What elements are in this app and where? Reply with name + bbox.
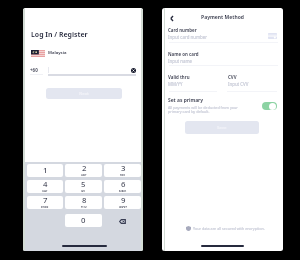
staticText: Save: [217, 125, 227, 131]
button[interactable]: 4: [27, 180, 63, 193]
staticText: 5: [81, 180, 86, 190]
staticText: Next: [79, 91, 89, 97]
staticText: 0: [81, 215, 86, 226]
staticText: 8: [82, 196, 87, 206]
button[interactable]: 8: [65, 196, 102, 209]
button[interactable]: Clear: [129, 66, 137, 74]
staticText: MNO: [119, 190, 127, 192]
staticText: 7: [43, 196, 48, 206]
staticText: PQRS: [41, 206, 49, 208]
staticText: Input name: [168, 58, 193, 64]
button[interactable]: 9: [104, 196, 141, 209]
button[interactable]: 7: [27, 196, 63, 209]
button[interactable]: 3: [104, 164, 141, 177]
button[interactable]: Back: [166, 12, 178, 24]
staticText: 2: [82, 164, 87, 174]
staticText: Valid thru: [168, 74, 190, 80]
staticText: Input CVV: [228, 81, 249, 87]
staticText: 3: [121, 164, 126, 174]
staticText: TUV: [81, 206, 87, 208]
button[interactable]: 1: [27, 164, 63, 177]
staticText: WXYZ: [119, 206, 127, 208]
staticText: Set as primary: [168, 97, 204, 104]
staticText: JKL: [81, 190, 86, 192]
button[interactable]: 0: [65, 214, 102, 227]
staticText: DEF: [120, 174, 126, 176]
staticText: Card number: [168, 27, 197, 33]
staticText: Log In / Register: [31, 30, 88, 39]
staticText: 9: [121, 196, 126, 206]
staticText: ABC: [81, 174, 87, 176]
staticText: 4: [43, 180, 48, 190]
staticText: Your data are all secured with encryptio…: [193, 226, 265, 231]
staticText: Payment Method: [162, 14, 283, 21]
button[interactable]: Backspace: [104, 214, 141, 228]
staticText: 1: [43, 165, 48, 176]
staticText: All payments will be deducted from your …: [168, 105, 238, 114]
staticText: Input card number: [168, 34, 208, 40]
staticText: Name on card: [168, 51, 199, 57]
button[interactable]: Set as primary: [262, 102, 277, 110]
staticText: CVV: [228, 74, 237, 80]
staticText: GHI: [42, 190, 48, 192]
button[interactable]: 2: [65, 164, 102, 177]
staticText: Malaysia: [48, 50, 67, 56]
button[interactable]: Malaysia: [31, 50, 67, 57]
staticText: 6: [121, 180, 126, 190]
staticText: +60: [30, 67, 38, 73]
button[interactable]: 5: [65, 180, 102, 193]
button[interactable]: 6: [104, 180, 141, 193]
staticText: MM/YY: [168, 81, 183, 87]
